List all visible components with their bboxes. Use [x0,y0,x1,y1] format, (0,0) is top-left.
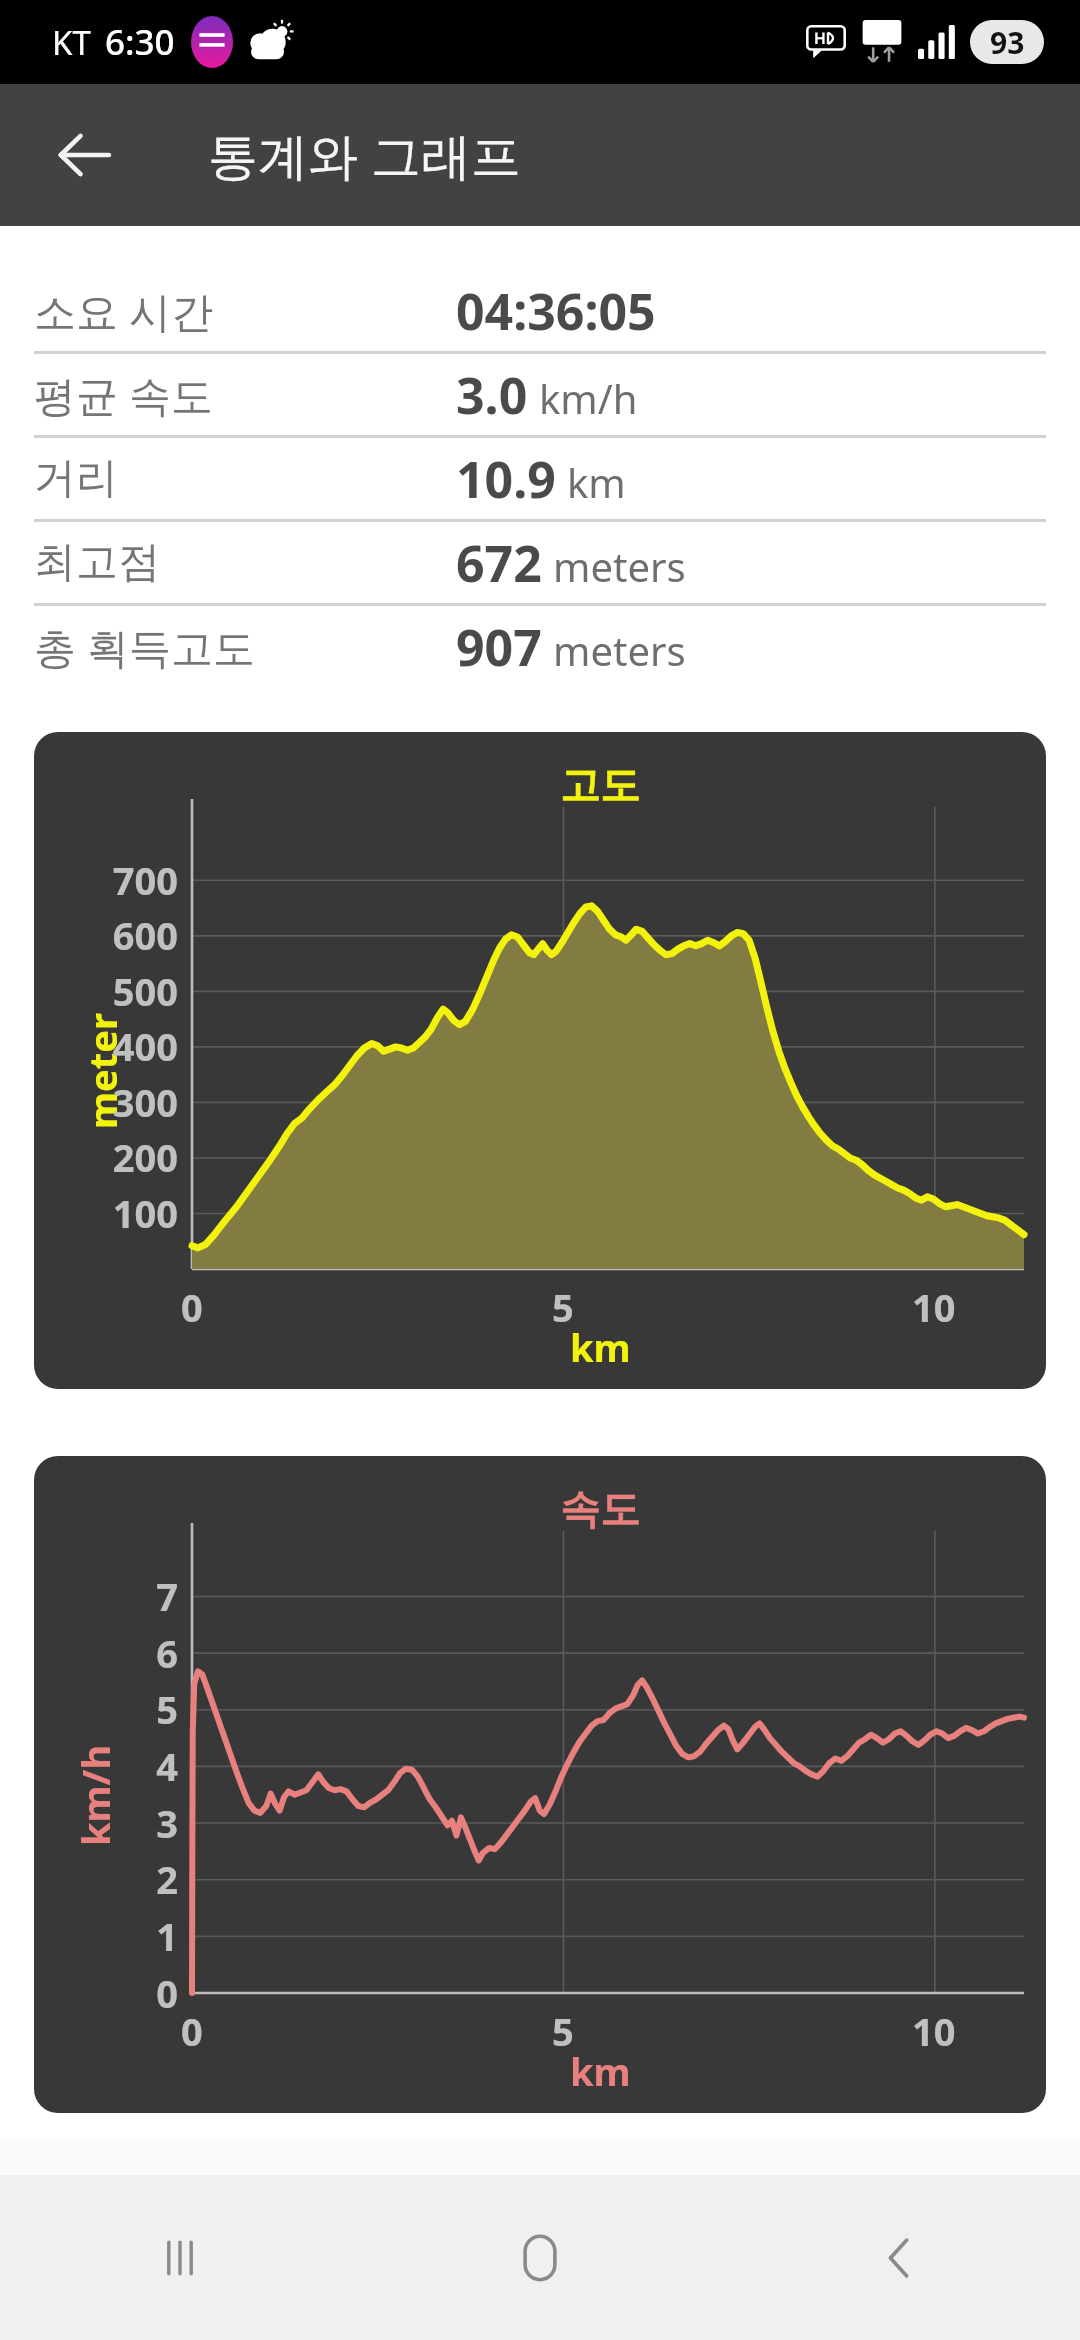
staticText: 속도 [560,1484,640,1534]
button[interactable]: Back [720,2175,1080,2340]
staticText: km/h [69,1744,121,1846]
staticText: 6 [156,1627,178,1679]
staticText: 평균 속도 [34,366,213,423]
staticText: km [570,1321,631,1373]
button[interactable]: 총 획득고도 [0,606,1080,687]
staticText: 600 [112,909,178,961]
staticText: 700 [112,854,178,906]
staticText: 672 [456,529,542,597]
staticText: 총 획득고도 [34,618,255,675]
staticText: 4 [156,1740,178,1792]
staticText: 907 [456,613,542,681]
staticText: 0 [156,1967,178,2019]
staticText: 10 [912,1281,956,1333]
staticText: km [567,455,626,509]
staticText: km [570,2045,631,2097]
staticText: 200 [112,1131,178,1183]
staticText: 3.0 [456,361,528,429]
staticText: 1 [156,1910,178,1962]
button[interactable]: 평균 속도 [0,354,1080,435]
staticText: 거리 [34,452,118,505]
button[interactable]: 소요 시간 [0,270,1080,351]
staticText: 0 [181,1281,203,1333]
staticText: 소요 시간 [34,282,213,339]
staticText: meters [553,623,686,677]
button[interactable]: Back [30,101,138,209]
staticText: 10.9 [456,445,556,513]
staticText: 3 [156,1797,178,1849]
staticText: 0 [181,2005,203,2057]
staticText: 10 [912,2005,956,2057]
staticText: 통계와 그래프 [208,121,521,189]
staticText: KT [52,20,91,65]
staticText: 93 [990,22,1025,63]
staticText: 500 [112,965,178,1017]
staticText: 5 [552,2005,574,2057]
button[interactable]: 거리 [0,438,1080,519]
staticText: meter [76,1013,128,1129]
staticText: 04:36:05 [456,277,656,345]
staticText: meters [553,539,686,593]
button[interactable]: Home [360,2175,720,2340]
staticText: 300 [112,1076,178,1128]
button[interactable]: 최고점 [0,522,1080,603]
staticText: 2 [156,1853,178,1905]
staticText: 고도 [560,760,640,810]
staticText: km/h [539,371,638,425]
staticText: 5 [156,1683,178,1735]
staticText: 7 [156,1570,178,1622]
staticText: 최고점 [34,536,160,589]
staticText: 400 [112,1020,178,1072]
button[interactable]: Recent apps [0,2175,360,2340]
button[interactable]: 고도 [34,732,1046,1389]
staticText: 6:30 [105,18,175,66]
staticText: 100 [112,1187,178,1239]
staticText: 5 [552,1281,574,1333]
button[interactable]: 속도 [34,1456,1046,2113]
